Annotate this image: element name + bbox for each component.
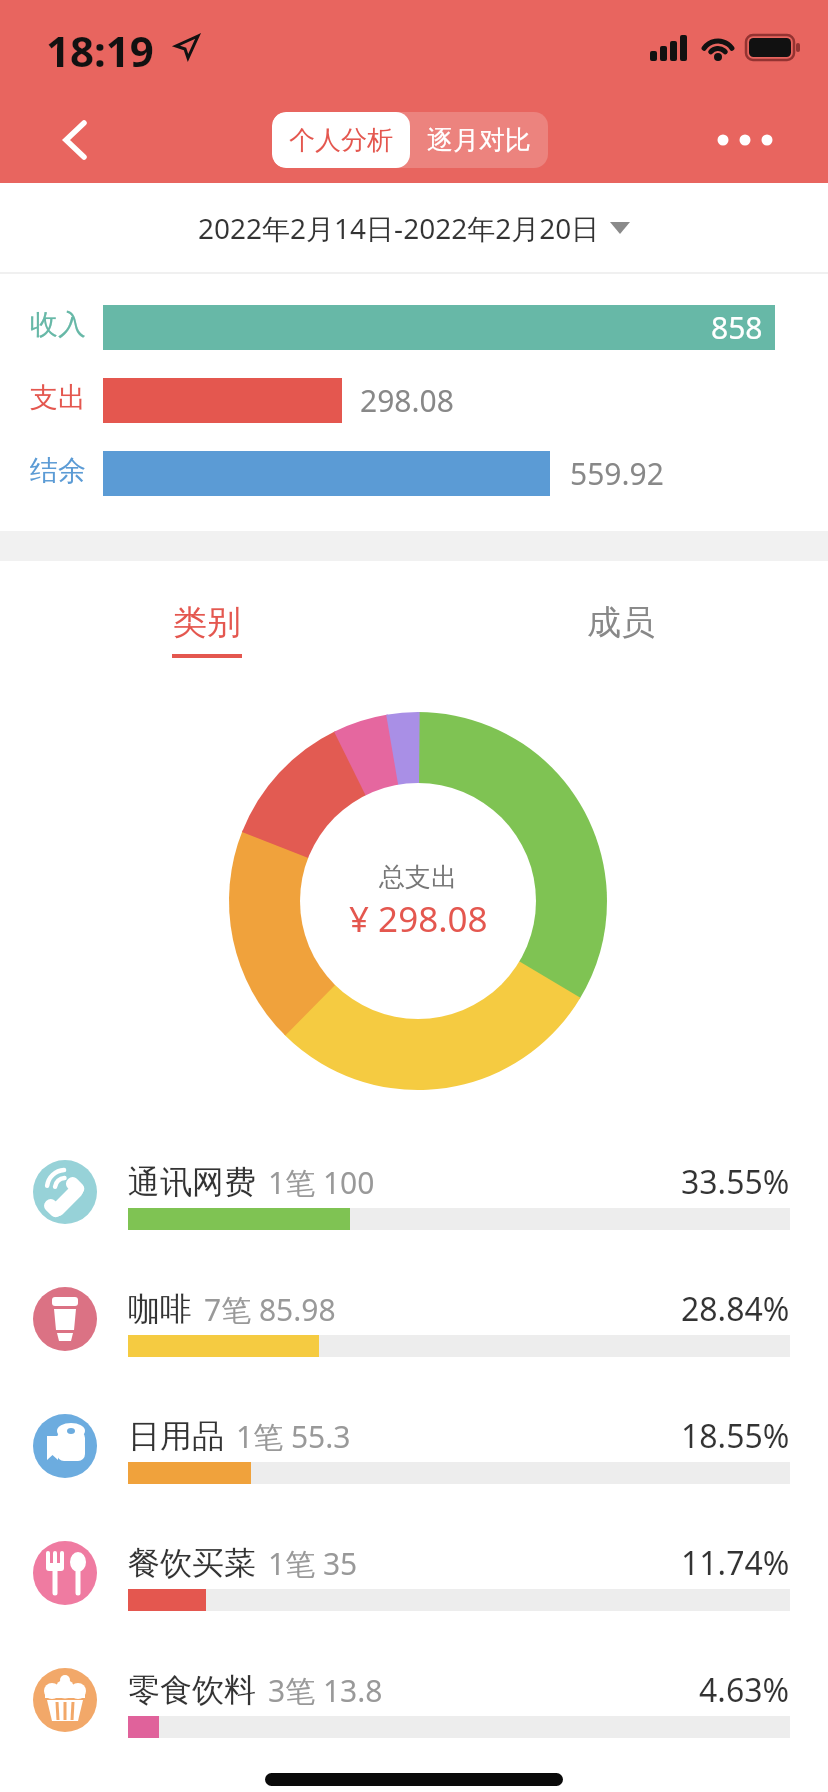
button[interactable]: 成员	[551, 592, 691, 652]
button[interactable]: 餐饮买菜	[0, 1510, 828, 1636]
staticText: 18:19	[46, 22, 154, 79]
staticText: 4.63%	[699, 1668, 790, 1712]
button[interactable]: 类别	[137, 592, 277, 652]
staticText: 结余	[30, 453, 86, 488]
staticText: 咖啡	[128, 1289, 192, 1329]
staticText: 1笔 100	[268, 1162, 375, 1203]
staticText: 总支出	[379, 861, 457, 894]
staticText: 零食饮料	[128, 1670, 256, 1710]
staticText: 298.08	[360, 380, 454, 421]
staticText: 28.84%	[681, 1287, 790, 1331]
staticText: 日用品	[128, 1416, 224, 1456]
staticText: 7笔 85.98	[204, 1289, 336, 1330]
staticText: 支出	[30, 380, 86, 415]
staticText: 收入	[30, 307, 86, 342]
staticText: 成员	[587, 601, 655, 644]
staticText: 个人分析	[289, 124, 393, 157]
staticText: 1笔 55.3	[236, 1416, 351, 1457]
button[interactable]: 2022年2月14日-2022年2月20日	[0, 183, 828, 273]
button[interactable]: 零食饮料	[0, 1637, 828, 1763]
staticText: 858	[711, 307, 763, 348]
button[interactable]: 咖啡	[0, 1256, 828, 1382]
staticText: 18.55%	[681, 1414, 790, 1458]
staticText: 通讯网费	[128, 1162, 256, 1202]
staticText: 559.92	[570, 453, 664, 494]
button[interactable]: 通讯网费	[0, 1129, 828, 1255]
staticText: 2022年2月14日-2022年2月20日	[198, 209, 600, 247]
button[interactable]: 日用品	[0, 1383, 828, 1509]
button[interactable]: 个人分析	[272, 112, 410, 168]
staticText: 33.55%	[681, 1160, 790, 1204]
button[interactable]: 逐月对比	[410, 112, 548, 168]
staticText: 逐月对比	[427, 124, 531, 157]
staticText: 1笔 35	[268, 1543, 358, 1584]
staticText: 3笔 13.8	[268, 1670, 383, 1711]
button[interactable]	[700, 116, 790, 164]
staticText: 11.74%	[681, 1541, 790, 1585]
staticText: ¥ 298.08	[349, 895, 488, 943]
staticText: 类别	[173, 601, 241, 644]
button[interactable]	[40, 104, 110, 174]
staticText: 餐饮买菜	[128, 1543, 256, 1583]
